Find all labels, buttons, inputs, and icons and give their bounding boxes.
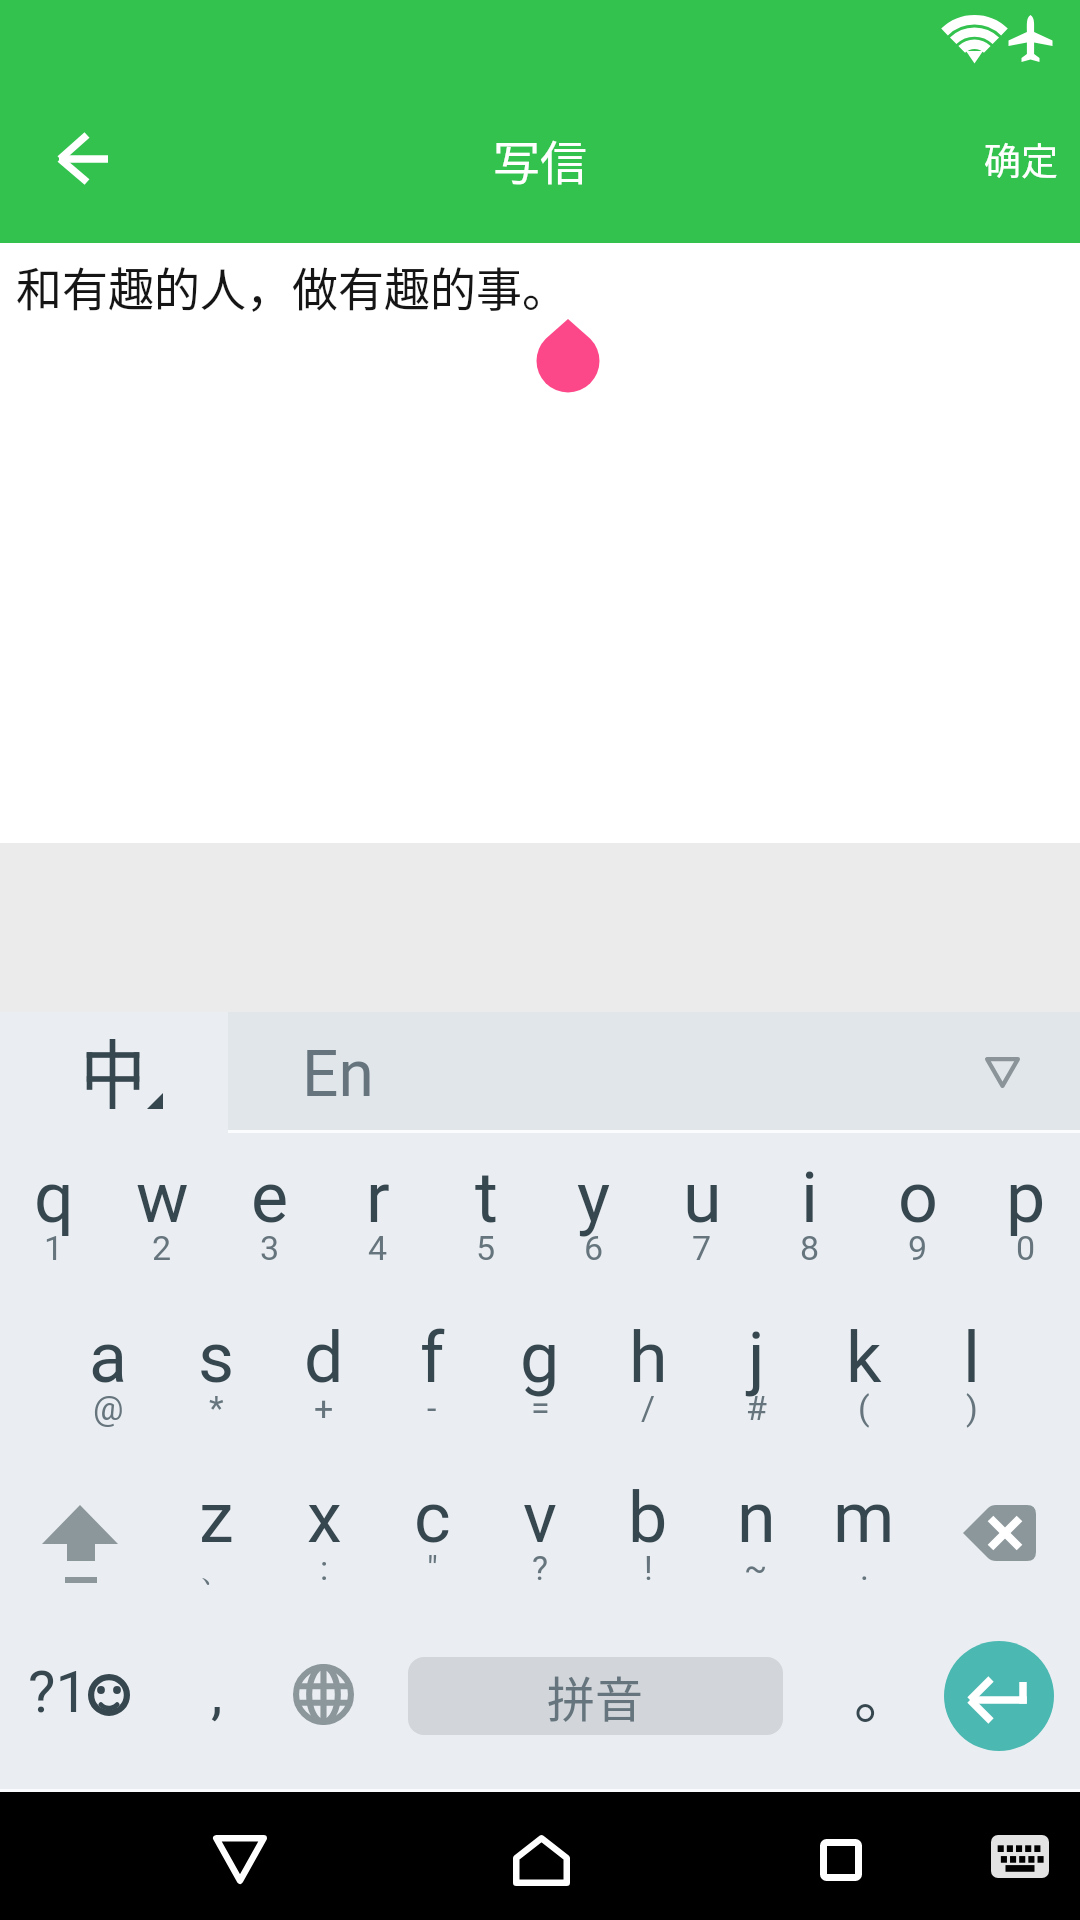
staticText: 和有趣的人，做有趣的事。 (16, 253, 568, 320)
button[interactable]: k (810, 1317, 918, 1457)
staticText: 6 (584, 1228, 604, 1268)
staticText: h (629, 1317, 668, 1399)
staticText: f (420, 1317, 445, 1399)
staticText: m (833, 1477, 895, 1559)
staticText: 2 (152, 1228, 172, 1268)
button[interactable]: f (378, 1317, 486, 1457)
button[interactable]: h (594, 1317, 702, 1457)
button[interactable]: Recent apps (760, 1792, 920, 1920)
button[interactable]: q (0, 1157, 108, 1297)
staticText: ?1 (28, 1658, 89, 1726)
staticText: 3 (260, 1228, 280, 1268)
staticText: En (302, 1037, 374, 1112)
staticText: ) (966, 1388, 978, 1428)
staticText: t (475, 1157, 498, 1239)
staticText: ! (644, 1548, 653, 1588)
staticText: 8 (800, 1228, 820, 1268)
button[interactable]: Enter (944, 1641, 1054, 1751)
button[interactable]: a (54, 1317, 162, 1457)
staticText: 。 (854, 1651, 913, 1735)
button[interactable]: 确定 (920, 80, 1080, 243)
staticText: 5 (476, 1228, 496, 1268)
button[interactable]: Switch keyboard language (273, 1612, 373, 1772)
button[interactable]: t (432, 1157, 540, 1297)
button[interactable]: n (702, 1477, 810, 1617)
staticText: # (746, 1388, 767, 1428)
staticText: 0 (1016, 1228, 1036, 1268)
button[interactable]: 拼音 (408, 1657, 783, 1735)
staticText: s (198, 1317, 235, 1399)
staticText: 9 (908, 1228, 928, 1268)
button[interactable]: g (486, 1317, 594, 1457)
button[interactable]: e (216, 1157, 324, 1297)
staticText: o (898, 1157, 938, 1239)
staticText: 4 (368, 1228, 388, 1268)
button[interactable]: Chinese input method (0, 1012, 228, 1128)
button[interactable]: v (486, 1477, 594, 1617)
staticText: 1 (44, 1228, 64, 1268)
staticText: p (1006, 1157, 1046, 1239)
button[interactable]: p (972, 1157, 1080, 1297)
button[interactable]: Shift (0, 1477, 162, 1617)
button[interactable]: m (810, 1477, 918, 1617)
staticText: k (846, 1317, 882, 1399)
staticText: 、 (199, 1548, 233, 1591)
button[interactable]: Backspace (918, 1477, 1080, 1617)
button[interactable]: r (324, 1157, 432, 1297)
staticText: z (199, 1477, 234, 1559)
staticText: g (520, 1317, 560, 1399)
button[interactable]: i (756, 1157, 864, 1297)
staticText: + (314, 1388, 334, 1428)
staticText: w (136, 1157, 189, 1239)
staticText: / (641, 1388, 656, 1428)
staticText: q (34, 1157, 74, 1239)
button[interactable]: y (540, 1157, 648, 1297)
button[interactable]: o (864, 1157, 972, 1297)
staticText: c (414, 1477, 451, 1559)
staticText: : (320, 1548, 329, 1588)
staticText: v (523, 1477, 557, 1559)
button[interactable]: Back (0, 80, 165, 243)
button[interactable]: j (702, 1317, 810, 1457)
button[interactable]: b (594, 1477, 702, 1617)
staticText: 写信 (493, 125, 587, 193)
staticText: ( (858, 1388, 870, 1428)
button[interactable]: w (108, 1157, 216, 1297)
staticText: e (251, 1157, 289, 1239)
button[interactable]: Symbols and emoji (0, 1612, 160, 1772)
staticText: * (209, 1388, 224, 1428)
staticText: n (737, 1477, 776, 1559)
staticText: j (748, 1317, 765, 1399)
staticText: y (577, 1157, 611, 1239)
staticText: u (683, 1157, 722, 1239)
staticText: @ (93, 1388, 124, 1428)
staticText: r (366, 1157, 390, 1239)
button[interactable]: Change keyboard (960, 1792, 1080, 1920)
button[interactable]: En (228, 1012, 1080, 1130)
staticText: x (307, 1477, 342, 1559)
staticText: l (963, 1317, 981, 1399)
staticText: 拼音 (547, 1661, 644, 1731)
button[interactable]: c (378, 1477, 486, 1617)
staticText: b (628, 1477, 668, 1559)
button[interactable]: x (270, 1477, 378, 1617)
button[interactable]: Back (160, 1792, 320, 1920)
button[interactable]: , (170, 1612, 270, 1772)
staticText: . (860, 1548, 869, 1588)
button[interactable]: l (918, 1317, 1026, 1457)
staticText: - (427, 1388, 437, 1428)
staticText: d (304, 1317, 344, 1399)
button[interactable]: s (162, 1317, 270, 1457)
button[interactable]: u (648, 1157, 756, 1297)
staticText: ~ (744, 1548, 768, 1588)
staticText: a (89, 1317, 128, 1399)
button[interactable]: d (270, 1317, 378, 1457)
button[interactable]: z (162, 1477, 270, 1617)
staticText: 7 (692, 1228, 712, 1268)
staticText: 确定 (984, 132, 1058, 186)
button[interactable]: Home (460, 1792, 620, 1920)
staticText: , (211, 1659, 223, 1727)
staticText: i (801, 1157, 819, 1239)
button[interactable]: 。 (820, 1612, 910, 1772)
staticText: ? (532, 1548, 549, 1588)
